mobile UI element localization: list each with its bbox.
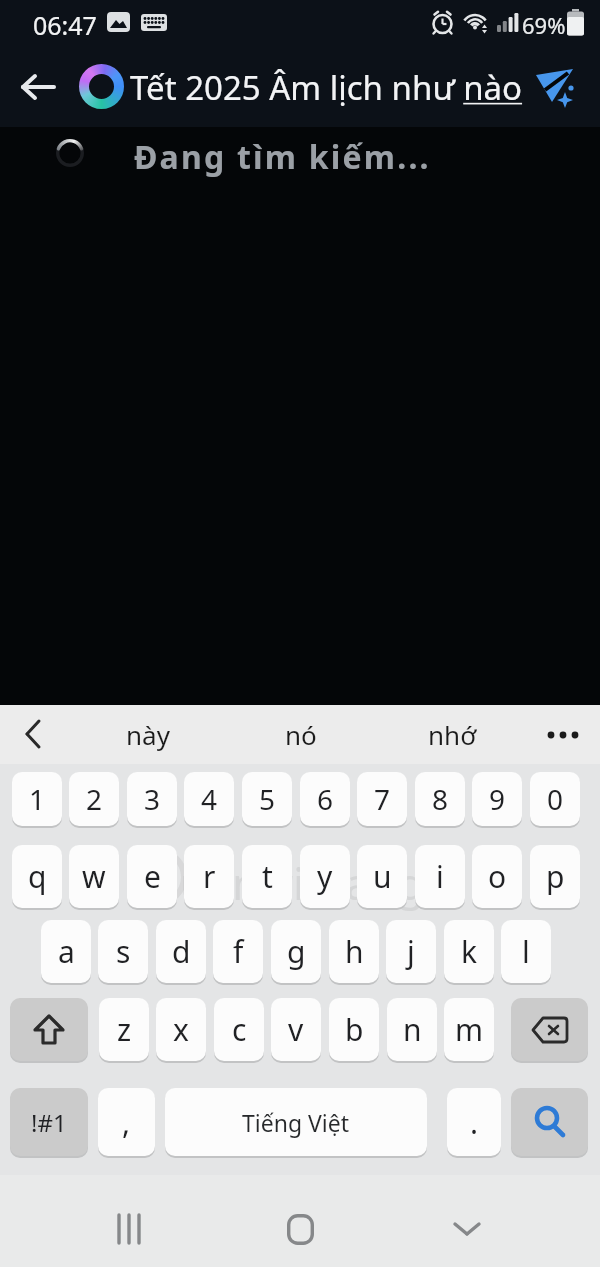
button[interactable]: f <box>213 920 263 983</box>
button[interactable]: 8 <box>415 772 465 826</box>
button[interactable]: 4 <box>184 772 234 826</box>
button[interactable]: x <box>156 998 206 1061</box>
button[interactable]: nhớ <box>400 709 505 759</box>
button[interactable]: r <box>184 845 234 908</box>
staticText: này <box>126 717 170 752</box>
button[interactable]: i <box>415 845 465 908</box>
button[interactable]: q <box>12 845 62 908</box>
button[interactable]: w <box>69 845 119 908</box>
staticText: y <box>317 856 333 897</box>
button[interactable]: 0 <box>530 772 580 826</box>
staticText: 5 <box>259 780 276 818</box>
staticText: r <box>203 856 216 897</box>
staticText: q <box>28 856 47 897</box>
button[interactable]: o <box>472 845 522 908</box>
button[interactable]: Tiếng Việt <box>165 1088 427 1156</box>
staticText: 69% <box>522 10 566 40</box>
button[interactable] <box>95 1198 165 1260</box>
button[interactable]: t <box>242 845 292 908</box>
staticText: 1 <box>29 780 46 818</box>
staticText: g <box>287 931 306 972</box>
staticText: 06:47 <box>33 8 97 42</box>
staticText: Tết 2025 Âm lịch như nào <box>130 65 523 110</box>
staticText: 8 <box>432 780 449 818</box>
staticText: k <box>461 931 478 972</box>
staticText: nó <box>285 717 317 752</box>
button[interactable]: u <box>357 845 407 908</box>
staticText: s <box>116 931 131 972</box>
staticText: v <box>288 1009 304 1050</box>
staticText: e <box>144 856 161 897</box>
button[interactable] <box>511 998 588 1061</box>
staticText: , <box>122 1102 131 1143</box>
staticText: uantrimang <box>180 853 425 913</box>
button[interactable]: z <box>99 998 149 1061</box>
button[interactable]: này <box>95 709 200 759</box>
button[interactable]: g <box>271 920 321 983</box>
staticText: i <box>436 856 444 897</box>
staticText: p <box>546 856 565 897</box>
button[interactable]: n <box>387 998 437 1061</box>
button[interactable]: e <box>127 845 177 908</box>
staticText: j <box>407 931 415 972</box>
button[interactable]: h <box>329 920 379 983</box>
button[interactable] <box>511 1088 588 1156</box>
button[interactable]: l <box>501 920 551 983</box>
button[interactable] <box>432 1198 502 1260</box>
button[interactable]: c <box>214 998 264 1061</box>
staticText: n <box>403 1009 422 1050</box>
button[interactable] <box>522 53 588 119</box>
staticText: h <box>345 931 364 972</box>
staticText: 2 <box>86 780 103 818</box>
button[interactable]: j <box>386 920 436 983</box>
staticText: x <box>173 1009 189 1050</box>
staticText: d <box>172 931 191 972</box>
button[interactable]: 7 <box>357 772 407 826</box>
staticText: 7 <box>374 780 391 818</box>
staticText: Đang tìm kiếm... <box>134 135 431 179</box>
staticText: l <box>522 931 530 972</box>
button[interactable]: 5 <box>242 772 292 826</box>
staticText: a <box>58 931 75 972</box>
staticText: t <box>262 856 273 897</box>
button[interactable] <box>8 709 58 759</box>
button[interactable]: 3 <box>127 772 177 826</box>
button[interactable] <box>537 709 589 761</box>
staticText: !#1 <box>31 1106 67 1139</box>
button[interactable]: k <box>444 920 494 983</box>
staticText: . <box>470 1102 479 1143</box>
staticText: b <box>345 1009 364 1050</box>
button[interactable]: s <box>98 920 148 983</box>
staticText: nhớ <box>428 717 477 752</box>
button[interactable]: , <box>98 1088 155 1156</box>
button[interactable]: d <box>156 920 206 983</box>
staticText: m <box>455 1009 484 1050</box>
staticText: z <box>117 1009 132 1050</box>
button[interactable]: !#1 <box>10 1088 88 1156</box>
button[interactable]: b <box>329 998 379 1061</box>
button[interactable] <box>10 59 66 115</box>
button[interactable]: 9 <box>472 772 522 826</box>
staticText: u <box>373 856 392 897</box>
button[interactable] <box>10 998 88 1061</box>
staticText: f <box>233 931 244 972</box>
button[interactable]: 2 <box>69 772 119 826</box>
button[interactable] <box>265 1198 335 1260</box>
button[interactable]: a <box>41 920 91 983</box>
button[interactable]: v <box>271 998 321 1061</box>
staticText: 0 <box>547 780 564 818</box>
staticText: w <box>82 856 106 897</box>
staticText: 3 <box>144 780 161 818</box>
staticText: Tiếng Việt <box>242 1107 350 1138</box>
staticText: o <box>488 856 507 897</box>
staticText: c <box>232 1009 247 1050</box>
button[interactable]: 1 <box>12 772 62 826</box>
button[interactable]: p <box>530 845 580 908</box>
button[interactable]: y <box>300 845 350 908</box>
button[interactable]: nó <box>248 709 353 759</box>
button[interactable]: 6 <box>300 772 350 826</box>
staticText: 4 <box>201 780 218 818</box>
staticText: 6 <box>317 780 334 818</box>
button[interactable]: m <box>444 998 494 1061</box>
button[interactable]: . <box>447 1088 501 1156</box>
